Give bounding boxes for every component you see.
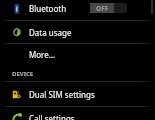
staticText: Data usage bbox=[29, 27, 72, 38]
staticText: Call settings bbox=[29, 113, 75, 120]
staticText: DEVICE bbox=[12, 70, 34, 78]
button[interactable]: Bluetooth on off switch bbox=[90, 3, 127, 13]
button[interactable]: Bluetooth bbox=[0, 0, 155, 20]
button[interactable]: Dual SIM settings bbox=[0, 82, 155, 106]
button[interactable]: Call settings bbox=[0, 106, 155, 120]
staticText: OFF bbox=[96, 4, 109, 13]
staticText: Bluetooth bbox=[29, 3, 67, 14]
staticText: Dual SIM settings bbox=[29, 89, 95, 100]
button[interactable]: Data usage bbox=[0, 20, 155, 44]
staticText: More… bbox=[29, 49, 56, 60]
button[interactable]: More… bbox=[0, 42, 155, 66]
